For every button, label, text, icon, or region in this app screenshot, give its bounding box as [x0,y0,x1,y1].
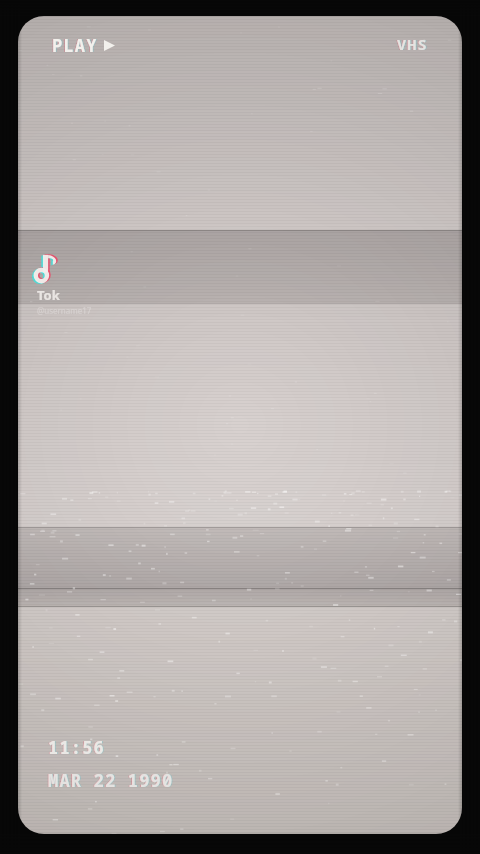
staticText: Tok [37,286,60,304]
staticText: 11:56 [48,736,105,759]
staticText: PLAY [52,34,98,57]
staticText: @username17 [37,305,92,316]
button[interactable]: VHS [393,30,432,58]
staticText: VHS [397,34,428,54]
staticText: VHS [396,34,427,54]
staticText: MAR 22 1990 [48,769,174,792]
button[interactable]: TikTok [32,254,92,316]
staticText: VHS [398,34,429,54]
staticText: MAR 22 1990 [47,769,173,792]
staticText: PLAY [51,34,97,57]
staticText: 11:56 [47,736,104,759]
other: TikTok [32,254,58,284]
staticText: 11:56 [49,736,106,759]
other: Play [104,40,115,51]
button[interactable]: 11:56 [48,736,174,792]
staticText: PLAY [53,34,99,57]
button[interactable]: PLAY [48,30,119,61]
staticText: MAR 22 1990 [49,769,175,792]
